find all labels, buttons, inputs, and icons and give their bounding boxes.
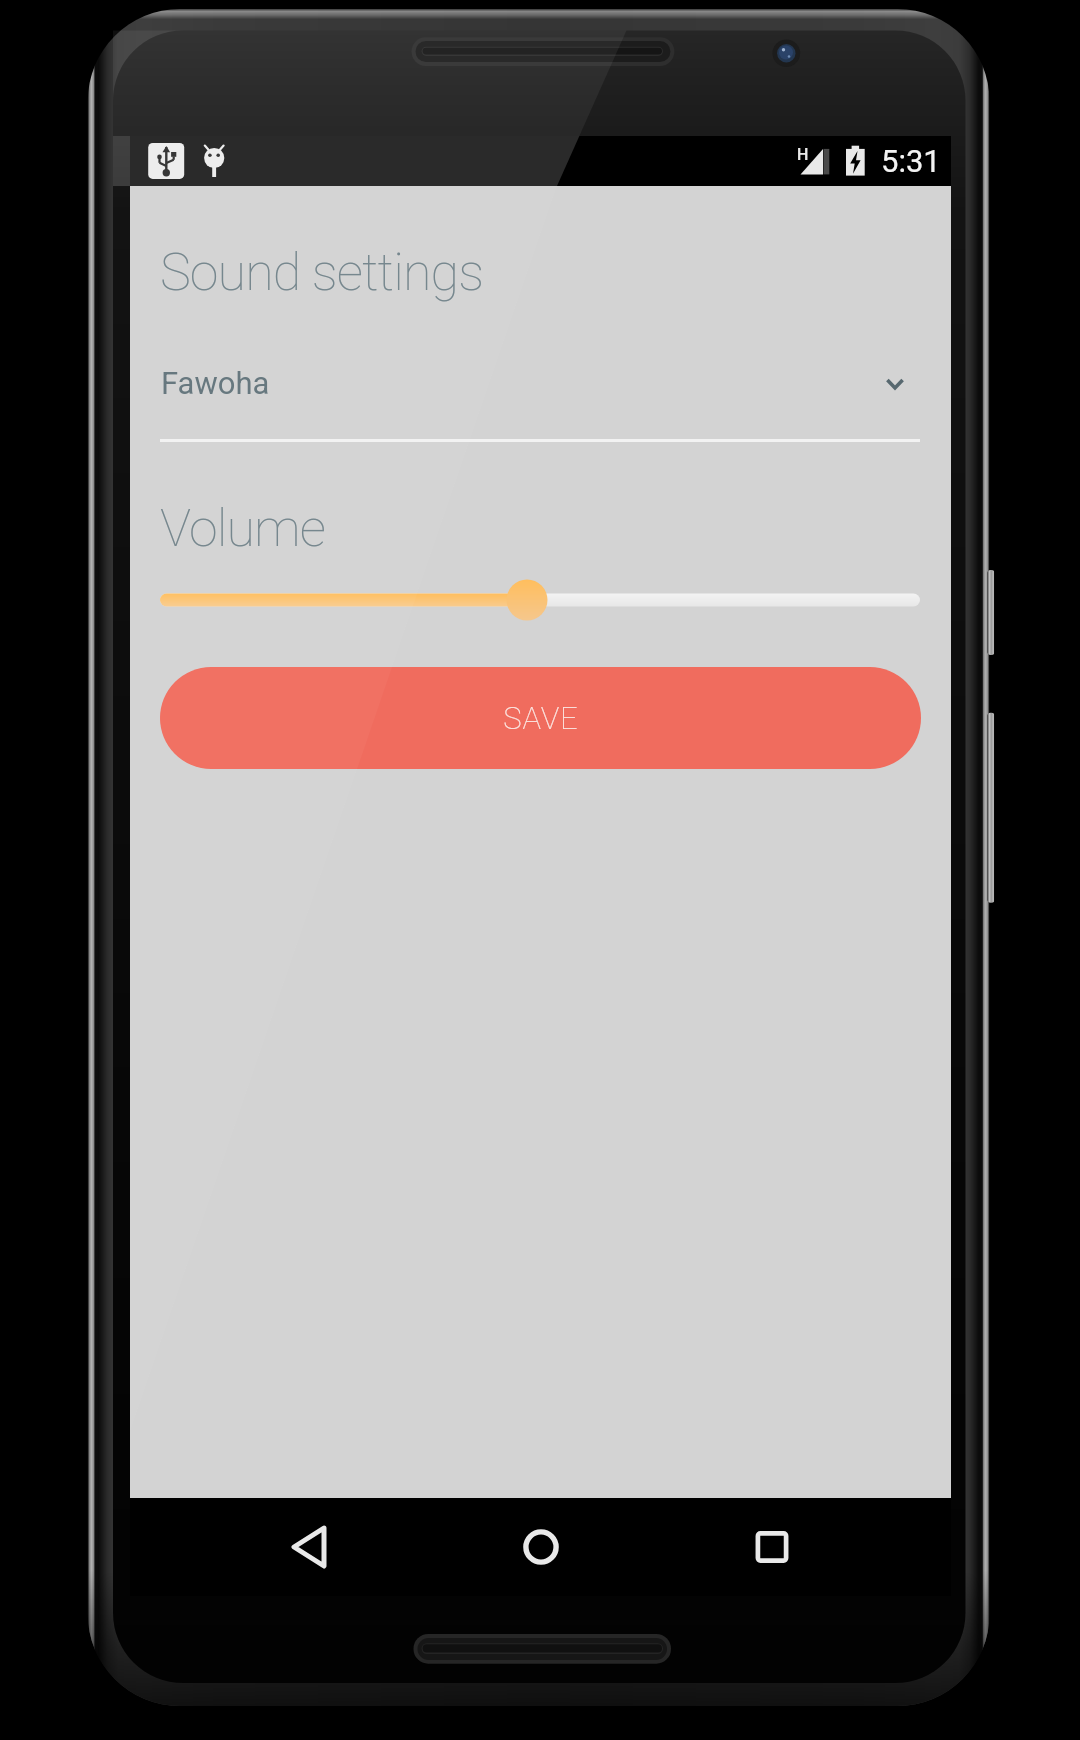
staticText: Volume	[160, 498, 326, 559]
staticText: SAVE	[503, 700, 579, 736]
button[interactable]: Home	[486, 1498, 596, 1596]
button[interactable]: Fawoha	[160, 346, 920, 428]
staticText: Sound settings	[160, 242, 484, 303]
staticText: 5:31	[881, 143, 941, 179]
button[interactable]: SAVE	[160, 667, 921, 769]
button[interactable]: Back	[255, 1498, 365, 1596]
staticText: H	[797, 145, 809, 164]
button[interactable]: Volume slider	[160, 576, 920, 624]
staticText: Fawoha	[161, 365, 270, 401]
button[interactable]: Recents	[717, 1498, 827, 1596]
